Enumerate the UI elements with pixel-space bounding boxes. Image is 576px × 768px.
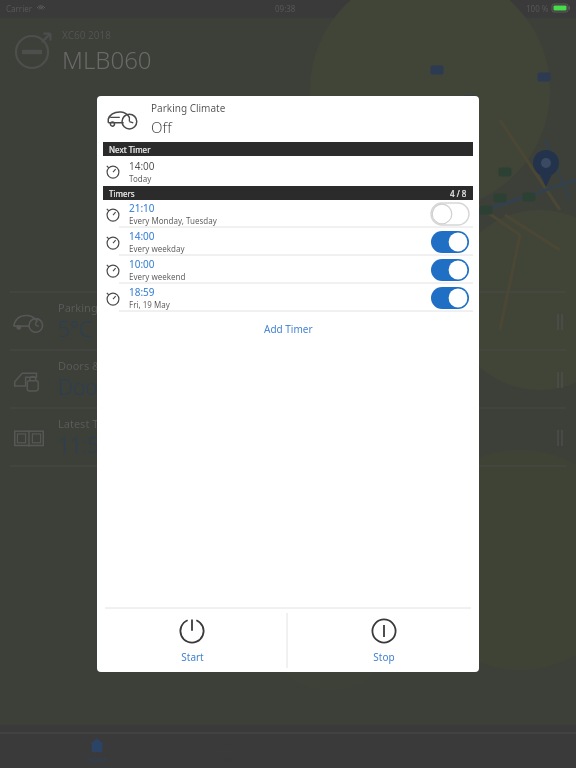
staticText: 18:59 (129, 285, 155, 299)
button[interactable]: Add Timer (97, 312, 479, 346)
staticText: Today (129, 173, 152, 184)
staticText: 11:52 (58, 431, 112, 460)
button[interactable]: 14:00 (97, 228, 479, 255)
staticText: Timers (109, 188, 135, 199)
staticText: Every weekend (129, 271, 186, 282)
button[interactable]: Stop (288, 609, 479, 672)
staticText: Home (87, 755, 107, 765)
button[interactable]: 10:00 (97, 256, 479, 283)
staticText: Fri, 19 May (129, 299, 170, 310)
staticText: 09:38 (275, 3, 296, 14)
staticText: Stop (373, 650, 395, 664)
staticText: Next Timer (109, 144, 151, 155)
button[interactable]: Home (67, 737, 127, 765)
staticText: Add Timer (264, 322, 313, 336)
staticText: Start (181, 650, 204, 664)
staticText: Doors & Lo (58, 358, 116, 373)
button[interactable]: 18:59 (97, 284, 479, 311)
button[interactable]: 21:10 (97, 200, 479, 227)
staticText: Carrier (6, 3, 33, 14)
staticText: Parking Cl (58, 300, 111, 315)
staticText: XC60 2018 (62, 28, 111, 42)
staticText: 21:10 (129, 201, 155, 215)
button[interactable]: 14:00 (105, 156, 479, 186)
button[interactable]: Timer enabled (431, 231, 469, 253)
button[interactable]: Timer enabled (431, 287, 469, 309)
staticText: Off (151, 117, 172, 137)
staticText: 10:00 (129, 257, 155, 271)
staticText: 4 / 8 (450, 188, 467, 199)
staticText: Parking Climate (151, 101, 226, 115)
staticText: MLB060 (62, 43, 152, 76)
staticText: Every weekday (129, 243, 185, 254)
staticText: 14:00 (129, 159, 155, 173)
button[interactable]: Timer disabled (431, 203, 469, 225)
staticText: 5°C a (58, 315, 109, 344)
staticText: Every Monday, Tuesday (129, 215, 217, 226)
staticText: Latest Trip (58, 416, 112, 431)
staticText: Door (58, 373, 106, 402)
staticText: 14:00 (129, 229, 155, 243)
button[interactable]: Start (97, 609, 287, 672)
button[interactable]: Timer enabled (431, 259, 469, 281)
staticText: 100 % (526, 3, 549, 14)
